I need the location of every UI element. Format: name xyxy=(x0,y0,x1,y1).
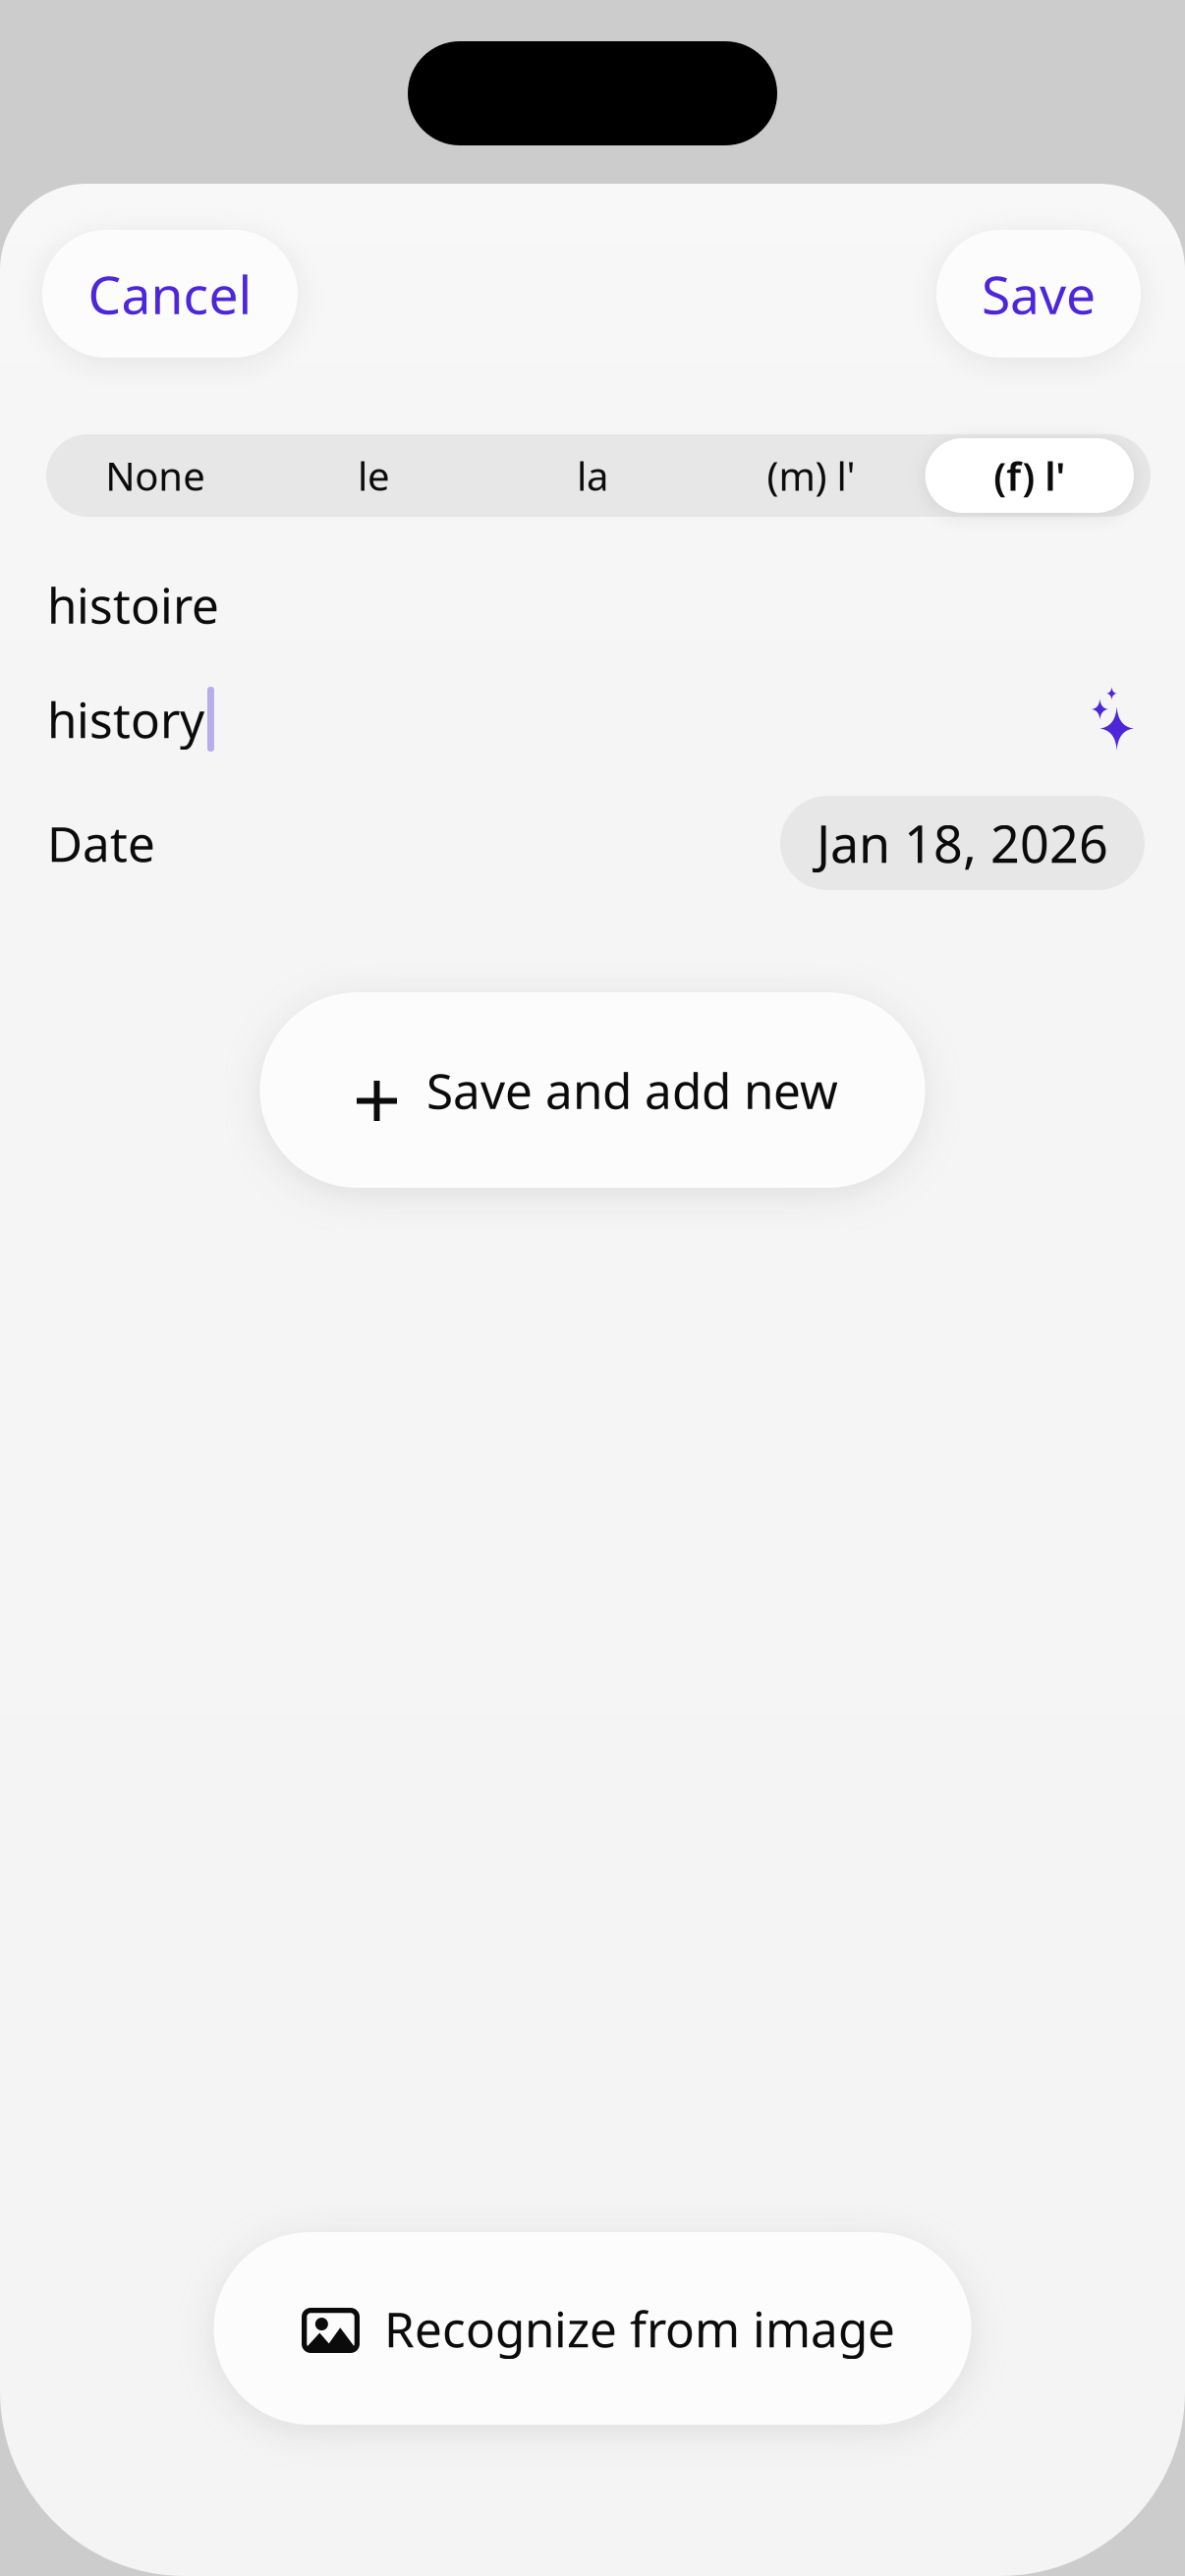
button[interactable]: Save and add new xyxy=(260,992,925,1188)
staticText: None xyxy=(105,449,206,502)
button[interactable]: Suggest translation xyxy=(1105,685,1145,754)
button[interactable]: histoire xyxy=(47,559,1145,650)
staticText: le xyxy=(358,449,390,502)
button[interactable]: Recognize from image xyxy=(214,2232,971,2425)
staticText: Save and add new xyxy=(426,1058,838,1122)
staticText: histoire xyxy=(47,572,219,637)
staticText: Date xyxy=(47,811,155,875)
button[interactable]: Jan 18, 2026 xyxy=(780,796,1145,890)
button[interactable]: history xyxy=(47,650,1105,788)
staticText: Save xyxy=(982,259,1096,329)
staticText: Cancel xyxy=(88,259,252,329)
staticText: (m) l' xyxy=(767,449,855,502)
staticText: Jan 18, 2026 xyxy=(817,809,1108,877)
button[interactable]: Cancel xyxy=(42,230,298,358)
staticText: Recognize from image xyxy=(384,2296,895,2361)
button[interactable]: le xyxy=(265,438,483,513)
button[interactable]: la xyxy=(483,438,702,513)
staticText: (f) l' xyxy=(994,449,1065,502)
button[interactable]: None xyxy=(46,438,265,513)
button[interactable]: Save xyxy=(936,230,1141,358)
staticText: la xyxy=(577,449,608,502)
staticText: history xyxy=(47,687,204,751)
button[interactable]: (m) l' xyxy=(702,438,920,513)
button[interactable]: (f) l' xyxy=(920,438,1139,513)
